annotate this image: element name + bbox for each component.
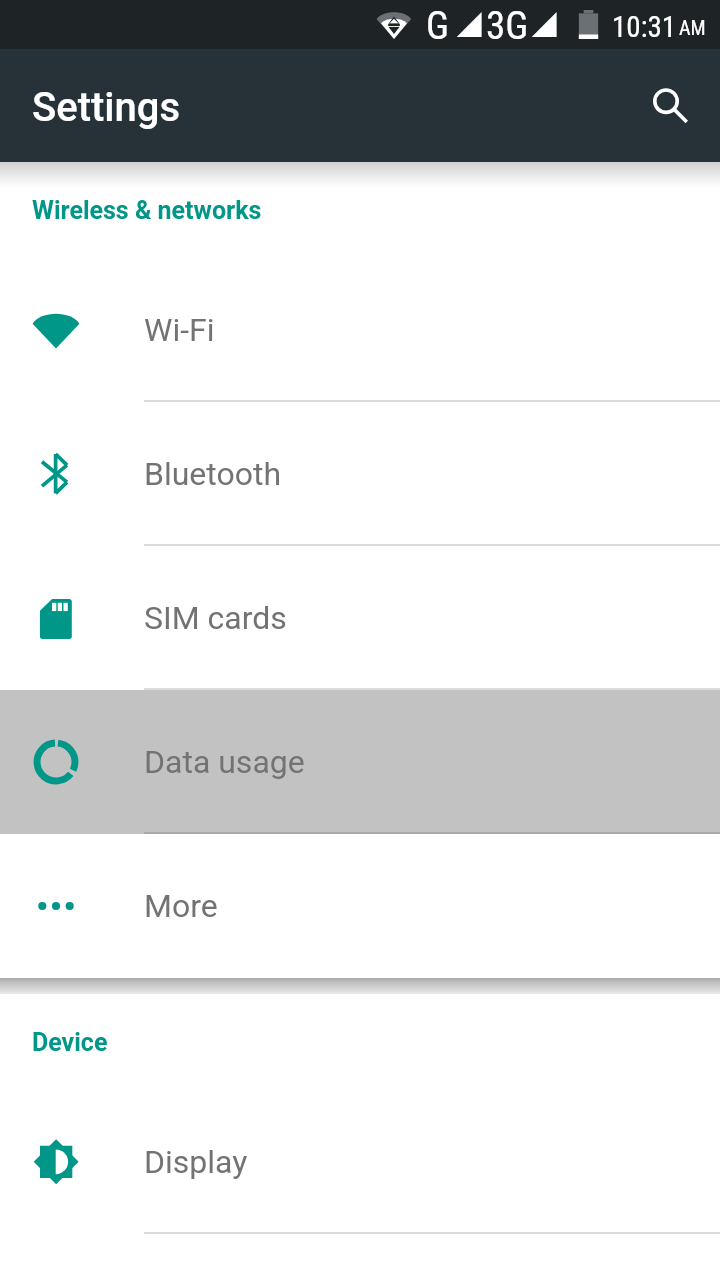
staticText: Bluetooth bbox=[144, 455, 282, 493]
button[interactable]: Wi-Fi bbox=[0, 258, 720, 402]
staticText: Wi-Fi bbox=[144, 311, 215, 349]
button[interactable]: Display bbox=[0, 1090, 720, 1234]
button[interactable]: Search bbox=[642, 78, 698, 134]
staticText: 3G bbox=[486, 3, 529, 49]
staticText: SIM cards bbox=[144, 599, 287, 637]
staticText: Wireless & networks bbox=[32, 196, 262, 225]
staticText: AM bbox=[679, 16, 706, 39]
staticText: 10:31 bbox=[612, 10, 677, 44]
button[interactable]: More bbox=[0, 834, 720, 978]
staticText: Data usage bbox=[144, 743, 305, 781]
button[interactable]: Bluetooth bbox=[0, 402, 720, 546]
staticText: G bbox=[426, 3, 450, 49]
staticText: More bbox=[144, 887, 218, 925]
staticText: Device bbox=[32, 1028, 108, 1057]
staticText: Settings bbox=[32, 84, 181, 131]
button[interactable]: SIM cards bbox=[0, 546, 720, 690]
staticText: Display bbox=[144, 1143, 248, 1181]
button[interactable]: Data usage bbox=[0, 690, 720, 834]
